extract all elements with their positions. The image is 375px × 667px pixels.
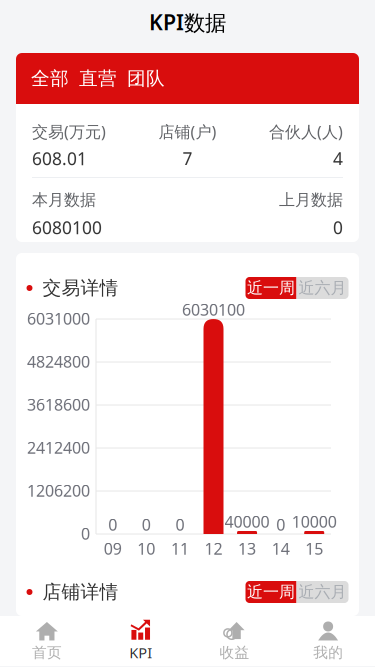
staticText: 4824800 (27, 351, 90, 372)
staticText: 收益 (219, 643, 249, 661)
button[interactable]: 全部 (31, 67, 69, 90)
staticText: 0 (81, 523, 90, 544)
button[interactable]: 近六月 (296, 277, 348, 299)
staticText: 店铺详情 (42, 580, 118, 603)
button[interactable]: 近六月 (296, 581, 348, 603)
staticText: 0 (175, 514, 184, 535)
staticText: 11 (171, 538, 189, 559)
staticText: 2412400 (27, 437, 90, 458)
button[interactable]: 近一周 (245, 277, 296, 299)
staticText: 13 (238, 538, 256, 559)
staticText: 09 (104, 538, 122, 559)
staticText: 7 (182, 147, 192, 165)
staticText: 0 (108, 514, 117, 535)
staticText: 40000 (225, 511, 270, 532)
button[interactable]: 直营 (79, 67, 117, 90)
button[interactable]: 我的 (281, 616, 375, 666)
staticText: 6080100 (32, 216, 102, 234)
staticText: 3618600 (27, 394, 90, 415)
staticText: 14 (272, 538, 290, 559)
staticText: 我的 (313, 643, 343, 661)
staticText: 1206200 (27, 480, 90, 501)
button[interactable]: 收益 (187, 616, 281, 666)
staticText: 6031000 (27, 308, 90, 329)
staticText: 近一周 (247, 582, 295, 602)
button[interactable]: KPI (94, 616, 188, 666)
staticText: 合伙人(人) (269, 121, 343, 138)
staticText: 0 (276, 514, 285, 535)
staticText: 首页 (32, 643, 62, 661)
button[interactable]: 首页 (0, 616, 94, 666)
staticText: 10000 (292, 511, 337, 532)
staticText: 近六月 (298, 278, 346, 298)
staticText: 0 (142, 514, 151, 535)
staticText: 交易(万元) (32, 121, 106, 138)
staticText: KPI数据 (149, 8, 226, 36)
staticText: 本月数据 (32, 190, 96, 207)
staticText: 608.01 (32, 147, 87, 165)
staticText: 近六月 (298, 582, 346, 602)
staticText: 交易详情 (42, 276, 118, 299)
staticText: 店铺(户) (158, 121, 216, 138)
staticText: 团队 (127, 67, 165, 90)
staticText: 10 (137, 538, 155, 559)
staticText: 上月数据 (279, 190, 343, 207)
staticText: 近一周 (247, 278, 295, 298)
staticText: 6030100 (182, 299, 245, 320)
staticText: 4 (333, 147, 343, 165)
staticText: KPI (129, 643, 152, 662)
staticText: 直营 (79, 67, 117, 90)
staticText: 全部 (31, 67, 69, 90)
button[interactable]: 近一周 (245, 581, 296, 603)
staticText: 12 (204, 538, 222, 559)
button[interactable]: 团队 (127, 67, 165, 90)
staticText: 15 (305, 538, 323, 559)
staticText: 0 (333, 216, 343, 234)
